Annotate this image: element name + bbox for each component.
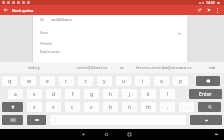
staticText: g	[90, 91, 94, 98]
staticText: tab	[209, 65, 216, 71]
staticText: d	[52, 91, 56, 98]
staticText: w	[27, 78, 31, 85]
button[interactable]: Emoji	[27, 115, 46, 125]
button[interactable]: u	[116, 76, 131, 86]
button[interactable]: Od	[33, 15, 187, 25]
button[interactable]: b	[103, 102, 118, 112]
button[interactable]: te	[116, 62, 128, 73]
staticText: x	[52, 104, 55, 111]
button[interactable]: x	[46, 102, 61, 112]
button[interactable]: s	[27, 89, 42, 99]
button[interactable]: f	[65, 89, 80, 99]
button[interactable]: Backspace	[196, 76, 220, 86]
button[interactable]: v	[84, 102, 99, 112]
button[interactable]: .	[179, 102, 194, 112]
button[interactable]: Komu	[33, 25, 187, 40]
button[interactable]: o	[154, 76, 169, 86]
button[interactable]: Enter	[189, 89, 222, 99]
staticText: ,	[167, 104, 169, 111]
staticText: i	[142, 78, 144, 85]
staticText: t	[85, 78, 87, 85]
staticText: o	[160, 78, 164, 85]
staticText: vencl@24net.cz	[77, 65, 108, 71]
staticText: j	[129, 91, 131, 98]
staticText: f	[72, 91, 74, 98]
staticText: e	[46, 78, 49, 85]
button[interactable]: a	[8, 89, 23, 99]
button[interactable]: Search	[198, 102, 221, 112]
staticText: Napište zprávu	[40, 50, 61, 54]
staticText: dobrý	[28, 65, 40, 71]
staticText: s	[33, 91, 36, 98]
staticText: m	[146, 104, 151, 111]
button[interactable]: ,	[160, 102, 175, 112]
button[interactable]: Shift	[2, 102, 23, 112]
button[interactable]: Předmět	[33, 40, 187, 47]
staticText: y	[103, 78, 106, 85]
staticText: p	[179, 78, 183, 85]
button[interactable]: Attach file	[196, 6, 204, 14]
button[interactable]: Back	[77, 129, 89, 140]
staticText: a	[14, 91, 17, 98]
button[interactable]: y	[97, 76, 112, 86]
staticText: v	[90, 104, 93, 111]
button[interactable]: p	[173, 76, 188, 86]
staticText: n	[128, 104, 132, 111]
button[interactable]: Hide keyboard	[212, 130, 221, 139]
button[interactable]: h	[103, 89, 118, 99]
staticText: te	[120, 65, 124, 71]
button[interactable]: g	[84, 89, 99, 99]
button[interactable]: Send	[205, 6, 213, 14]
button[interactable]: More options	[214, 7, 221, 14]
button[interactable]: k	[141, 89, 156, 99]
staticText: Komu	[40, 31, 49, 35]
button[interactable]: d	[46, 89, 61, 99]
button[interactable]: ferreno-vennika@seznam.cz	[128, 62, 200, 73]
button[interactable]: l	[160, 89, 175, 99]
staticText: Nová zpráva	[12, 8, 34, 13]
button[interactable]: Expand recipients	[176, 30, 182, 36]
button[interactable]: i	[135, 76, 150, 86]
staticText: Od	[40, 18, 45, 22]
button[interactable]: q	[2, 76, 17, 86]
staticText: z	[33, 104, 36, 111]
button[interactable]: m	[141, 102, 156, 112]
button[interactable]: c	[65, 102, 80, 112]
button[interactable]: Recent apps	[123, 129, 135, 140]
button[interactable]: r	[59, 76, 74, 86]
button[interactable]: Back	[2, 6, 10, 14]
staticText: k	[147, 91, 150, 98]
button[interactable]: e	[40, 76, 55, 86]
staticText: l	[167, 91, 169, 98]
button[interactable]: w	[21, 76, 36, 86]
button[interactable]: Napište zprávu	[33, 47, 187, 62]
button[interactable]: Home	[100, 129, 112, 140]
button[interactable]: Symbols	[2, 115, 23, 125]
staticText: r	[65, 78, 68, 85]
button[interactable]: vencl@24net.cz	[68, 62, 116, 73]
button[interactable]: j	[122, 89, 137, 99]
staticText: q	[8, 78, 12, 85]
button[interactable]: tab	[200, 62, 224, 73]
staticText: u	[122, 78, 126, 85]
button[interactable]: Enter key	[190, 115, 222, 125]
staticText: vencl@24net.cz	[51, 18, 72, 22]
staticText: ferreno-vennika@seznam.cz	[136, 65, 192, 71]
staticText: Enter	[199, 91, 212, 98]
staticText: 14:52	[206, 0, 215, 5]
button[interactable]: dobrý	[0, 62, 68, 73]
staticText: c	[71, 104, 74, 111]
staticText: .	[186, 104, 188, 111]
button[interactable]: n	[122, 102, 137, 112]
staticText: Předmět	[40, 42, 52, 46]
staticText: b	[109, 104, 113, 111]
button[interactable]: z	[27, 102, 42, 112]
staticText: h	[109, 91, 113, 98]
button[interactable]: t	[78, 76, 93, 86]
